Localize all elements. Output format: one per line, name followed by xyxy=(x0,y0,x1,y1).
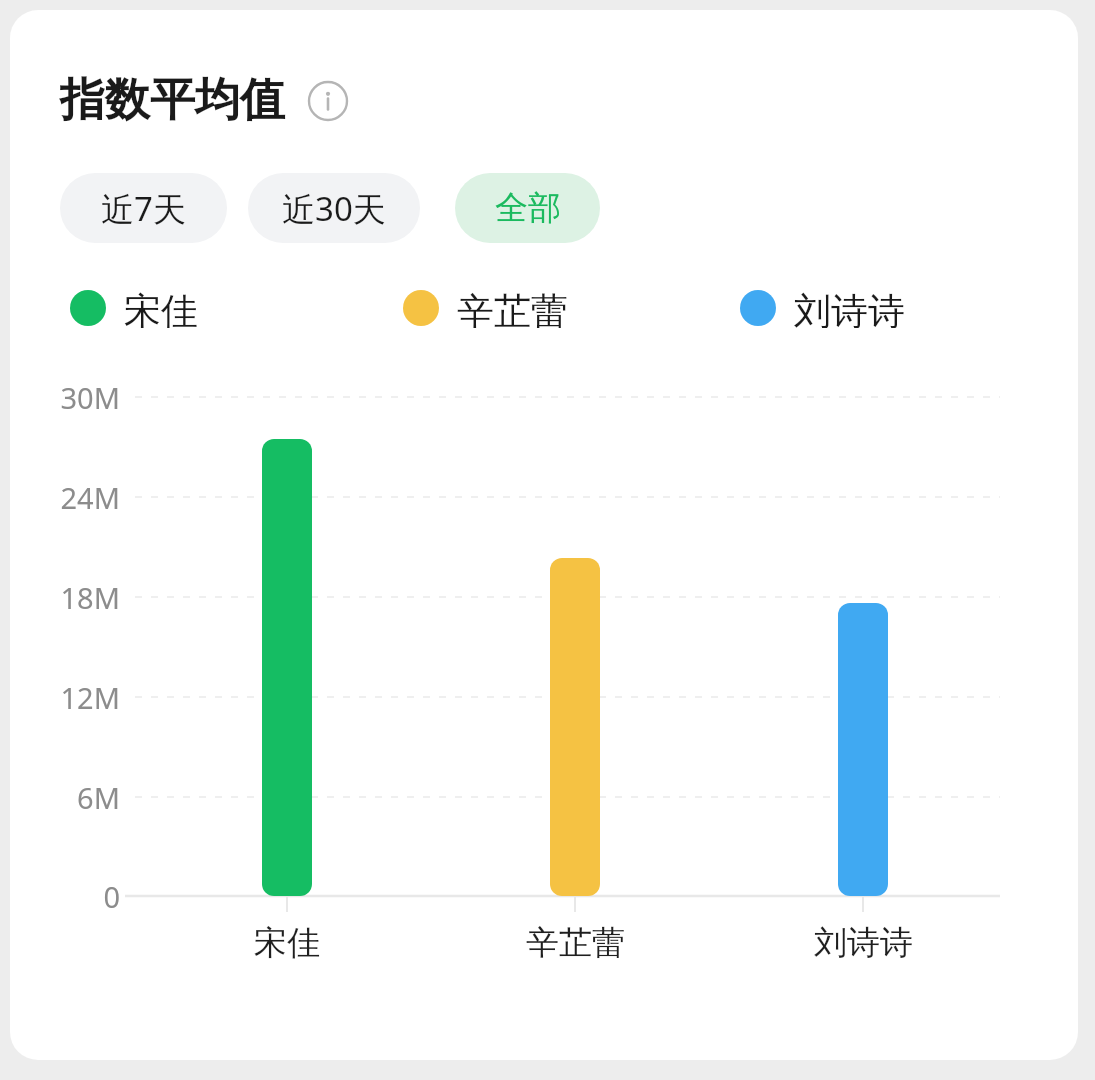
button[interactable]: 全部 xyxy=(455,173,600,243)
staticText: 24M xyxy=(60,478,120,517)
staticText: 辛芷蕾 xyxy=(457,288,568,328)
staticText: 近7天 xyxy=(101,186,186,231)
button[interactable]: 辛芷蕾 xyxy=(403,288,568,328)
staticText: 宋佳 xyxy=(124,288,198,328)
button[interactable]: 刘诗诗 xyxy=(740,288,905,328)
staticText: 全部 xyxy=(495,187,561,229)
staticText: 刘诗诗 xyxy=(814,922,913,964)
button[interactable]: 说明 xyxy=(307,80,349,122)
button[interactable]: 近30天 xyxy=(248,173,420,243)
staticText: 30M xyxy=(60,378,120,417)
staticText: 刘诗诗 xyxy=(794,288,905,328)
staticText: 12M xyxy=(60,678,120,717)
staticText: 6M xyxy=(77,778,120,817)
staticText: 近30天 xyxy=(282,186,386,231)
staticText: 18M xyxy=(60,578,120,617)
staticText: 指数平均值 xyxy=(60,72,285,129)
button[interactable]: 近7天 xyxy=(60,173,227,243)
staticText: 0 xyxy=(103,877,120,916)
staticText: 宋佳 xyxy=(254,922,320,964)
staticText: 辛芷蕾 xyxy=(526,922,625,964)
button[interactable]: 宋佳 xyxy=(70,288,198,328)
